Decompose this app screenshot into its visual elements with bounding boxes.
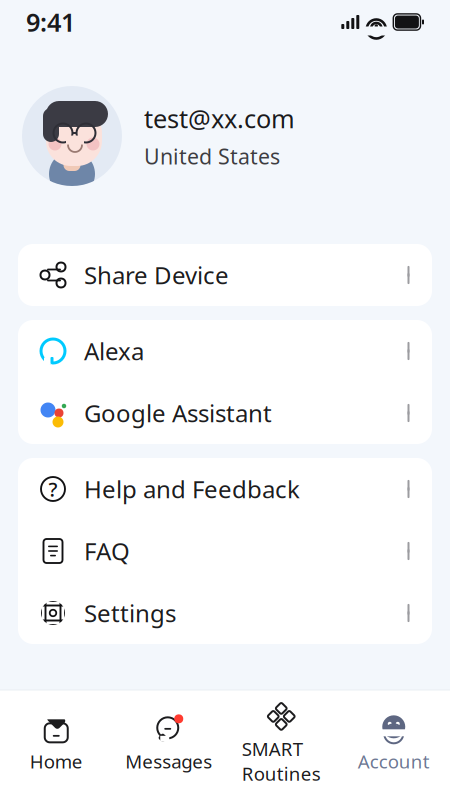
staticText: Share Device <box>84 259 229 291</box>
button[interactable]: Alexa <box>18 320 432 382</box>
button[interactable]: SMART Routines <box>225 694 337 794</box>
button[interactable]: Settings <box>18 582 432 644</box>
button[interactable]: Share Device <box>18 244 432 306</box>
button[interactable]: FAQ <box>18 520 432 582</box>
staticText: Settings <box>84 597 176 629</box>
staticText: Google Assistant <box>84 397 272 429</box>
staticText: United States <box>144 142 280 170</box>
staticText: Account <box>358 749 430 774</box>
staticText: Home <box>30 749 83 774</box>
button[interactable]: Home <box>0 707 112 782</box>
button[interactable]: Google Assistant <box>18 382 432 444</box>
staticText: test@xx.com <box>144 101 295 135</box>
button[interactable]: Profile photo <box>22 86 122 186</box>
staticText: Alexa <box>84 335 144 367</box>
button[interactable]: Messages <box>112 707 225 782</box>
staticText: SMART Routines <box>242 736 321 786</box>
button[interactable]: Account <box>337 707 450 782</box>
staticText: 9:41 <box>26 5 75 39</box>
staticText: FAQ <box>84 535 130 567</box>
button[interactable]: ? <box>18 458 432 520</box>
staticText: Messages <box>125 749 212 774</box>
staticText: Help and Feedback <box>84 473 300 505</box>
staticText: ? <box>48 476 57 502</box>
